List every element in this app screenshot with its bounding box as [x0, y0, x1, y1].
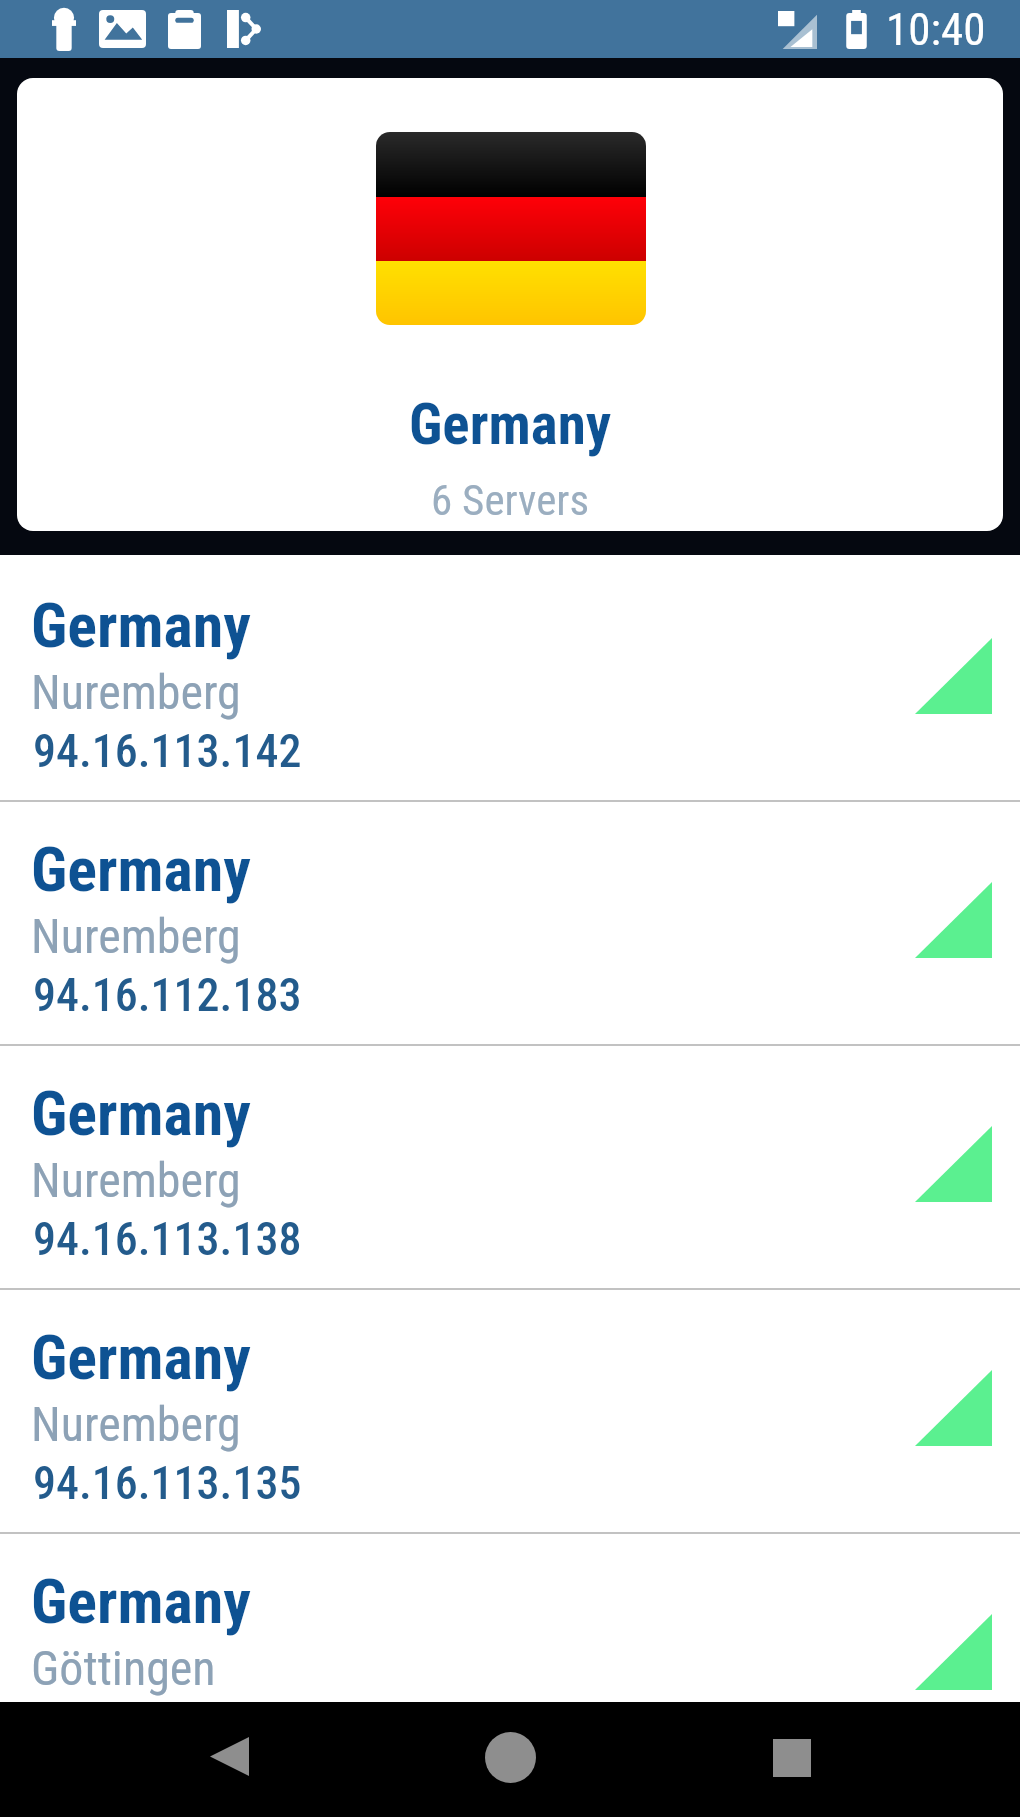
button[interactable]: Germany [0, 1046, 1020, 1288]
staticText: 94.16.113.138 [33, 1212, 302, 1266]
button[interactable]: Recent apps [746, 1713, 838, 1803]
staticText: Göttingen [31, 1640, 216, 1696]
staticText: Nuremberg [31, 664, 241, 720]
staticText: Germany [409, 391, 612, 458]
button[interactable]: Germany [0, 802, 1020, 1044]
staticText: Germany [31, 1565, 251, 1638]
staticText: 94.16.113.100 [33, 1700, 302, 1754]
staticText: 94.16.113.135 [33, 1456, 302, 1510]
button[interactable]: Germany [0, 558, 1020, 800]
staticText: Germany [31, 589, 251, 662]
staticText: 94.16.113.142 [33, 724, 302, 778]
staticText: 94.16.112.183 [33, 968, 302, 1022]
button[interactable]: Germany [17, 78, 1003, 531]
staticText: 10:40 [886, 3, 986, 56]
staticText: Germany [31, 1077, 251, 1150]
staticText: Nuremberg [31, 1152, 241, 1208]
button[interactable]: Germany [0, 1290, 1020, 1532]
staticText: Germany [31, 833, 251, 906]
staticText: Germany [31, 1321, 251, 1394]
button[interactable]: Back [183, 1711, 275, 1801]
button[interactable]: Germany [0, 1534, 1020, 1702]
staticText: Nuremberg [31, 908, 241, 964]
staticText: 6 Servers [431, 475, 590, 525]
button[interactable]: Home [464, 1712, 556, 1802]
staticText: Nuremberg [31, 1396, 241, 1452]
